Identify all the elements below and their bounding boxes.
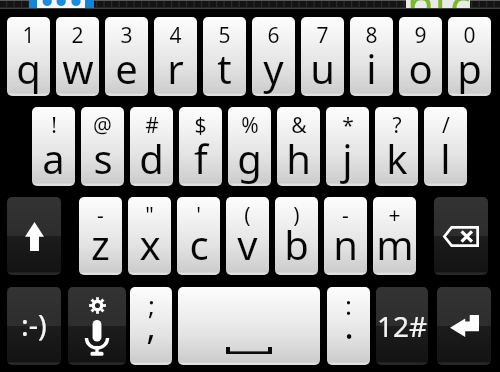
button[interactable]: :	[327, 287, 370, 365]
staticText: )	[293, 201, 300, 230]
button[interactable]: -	[324, 197, 367, 275]
staticText: 3	[120, 21, 133, 50]
button[interactable]: Backspace	[434, 197, 488, 275]
button[interactable]: 3	[105, 17, 148, 96]
staticText: f	[194, 131, 208, 185]
staticText: ?	[392, 111, 402, 140]
staticText: -	[97, 201, 104, 230]
staticText: 7	[316, 21, 329, 50]
staticText: o	[408, 41, 433, 95]
staticText: x	[139, 217, 161, 271]
button[interactable]: ?	[375, 107, 418, 186]
staticText: t	[217, 41, 232, 95]
staticText: b	[284, 217, 309, 271]
staticText: .	[344, 301, 354, 350]
staticText: 9	[414, 21, 427, 50]
button[interactable]: !	[32, 107, 75, 186]
button[interactable]: 8	[350, 17, 393, 96]
button[interactable]: 7	[301, 17, 344, 96]
staticText: ,	[146, 301, 156, 350]
button[interactable]: 9	[399, 17, 442, 96]
button[interactable]: 5	[203, 17, 246, 96]
staticText: s	[93, 131, 113, 185]
staticText: -	[342, 201, 349, 230]
button[interactable]: Space	[178, 287, 320, 365]
staticText: d	[139, 131, 164, 185]
staticText: l	[440, 131, 451, 185]
staticText: ;	[148, 287, 155, 322]
staticText: q	[16, 41, 41, 95]
button[interactable]: Shift	[7, 197, 61, 275]
staticText: a	[42, 131, 65, 185]
staticText: "	[145, 201, 154, 230]
button[interactable]: Enter	[437, 287, 491, 365]
button[interactable]: )	[275, 197, 318, 275]
staticText: 12#	[377, 307, 428, 345]
staticText: 4	[169, 21, 182, 50]
button[interactable]: Emoticons	[7, 287, 61, 365]
button[interactable]: 6	[252, 17, 295, 96]
staticText: c	[189, 217, 209, 271]
staticText: &	[291, 111, 307, 140]
staticText: :	[345, 287, 352, 322]
staticText: 8	[365, 21, 378, 50]
button[interactable]: 2	[56, 17, 99, 96]
staticText: j	[342, 131, 353, 185]
staticText: m	[376, 217, 414, 271]
staticText: 5	[218, 21, 231, 50]
staticText: p	[457, 41, 482, 95]
button[interactable]: 0	[448, 17, 491, 96]
button[interactable]: 1	[7, 17, 50, 96]
staticText: +	[388, 201, 401, 230]
button[interactable]: %	[228, 107, 271, 186]
staticText: v	[237, 217, 258, 271]
button[interactable]: +	[373, 197, 416, 275]
button[interactable]: *	[326, 107, 369, 186]
staticText: 6	[267, 21, 280, 50]
staticText: e	[115, 41, 138, 95]
staticText: w	[62, 41, 94, 95]
staticText: %	[241, 111, 259, 140]
button[interactable]: /	[424, 107, 467, 186]
button[interactable]: -	[79, 197, 122, 275]
button[interactable]: Settings and voice input	[68, 287, 126, 365]
staticText: htc	[407, 0, 470, 8]
staticText: r	[167, 41, 184, 95]
staticText: @	[93, 111, 112, 140]
staticText: h	[286, 131, 311, 185]
staticText: i	[366, 41, 377, 95]
staticText: z	[91, 217, 110, 271]
staticText: :-)	[21, 305, 47, 344]
button[interactable]: $	[179, 107, 222, 186]
staticText: '	[196, 201, 201, 230]
button[interactable]: @	[81, 107, 124, 186]
staticText: #	[145, 111, 159, 140]
button[interactable]: #	[130, 107, 173, 186]
staticText: n	[333, 217, 358, 271]
button[interactable]: ;	[130, 287, 172, 365]
staticText: y	[263, 41, 284, 95]
button[interactable]: (	[226, 197, 269, 275]
staticText: 1	[22, 21, 35, 50]
staticText: k	[386, 131, 408, 185]
button[interactable]: &	[277, 107, 320, 186]
staticText: !	[51, 111, 57, 140]
button[interactable]: '	[177, 197, 220, 275]
staticText: /	[442, 111, 450, 140]
button[interactable]: 4	[154, 17, 197, 96]
staticText: (	[244, 201, 251, 230]
button[interactable]: 12#	[376, 287, 428, 365]
staticText: u	[310, 41, 335, 95]
staticText: $	[194, 111, 207, 140]
staticText: 0	[463, 21, 476, 50]
staticText: g	[237, 131, 262, 185]
staticText: 2	[71, 21, 84, 50]
button[interactable]: "	[128, 197, 171, 275]
staticText: *	[342, 111, 354, 140]
